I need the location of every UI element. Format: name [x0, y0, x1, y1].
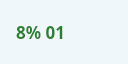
staticText: 8% 01	[16, 21, 65, 44]
